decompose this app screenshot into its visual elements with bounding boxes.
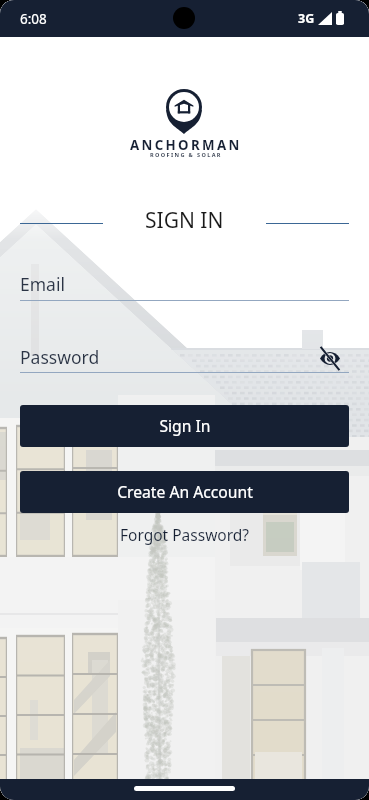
button[interactable]: Show password [317, 345, 343, 371]
staticText: 6:08 [20, 10, 47, 28]
staticText: Password [20, 345, 100, 369]
staticText: SIGN IN [145, 206, 224, 235]
staticText: Sign In [159, 415, 211, 436]
staticText: 3G [298, 10, 315, 27]
staticText: Forgot Password? [120, 524, 250, 545]
staticText: ROOFING & SOLAR [150, 151, 222, 159]
staticText: ANCHORMAN [130, 136, 242, 154]
button[interactable]: Sign In [20, 405, 349, 447]
button[interactable]: Create An Account [20, 471, 349, 513]
button[interactable]: Forgot Password? [112, 522, 258, 547]
staticText: Email [20, 272, 65, 296]
staticText: Create An Account [117, 481, 253, 502]
